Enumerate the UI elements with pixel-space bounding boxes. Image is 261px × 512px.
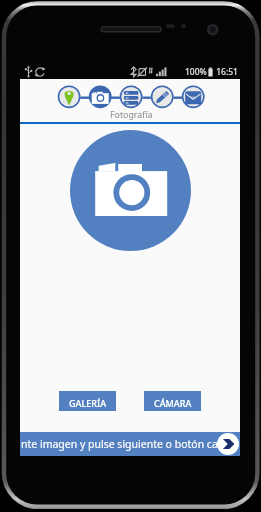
staticText: CÁMARA <box>154 397 192 409</box>
button[interactable]: GALERÍA <box>59 391 116 411</box>
button[interactable]: CÁMARA <box>144 391 201 411</box>
staticText: 100% <box>185 66 207 78</box>
button[interactable]: Siguiente <box>217 433 239 455</box>
staticText: GALERÍA <box>69 397 107 409</box>
staticText: 16:51 <box>214 66 238 78</box>
button[interactable]: Foto <box>70 130 191 251</box>
staticText: Fotografía <box>110 109 153 121</box>
staticText: nte imagen y pulse siguiente o botón ca <box>21 437 218 451</box>
